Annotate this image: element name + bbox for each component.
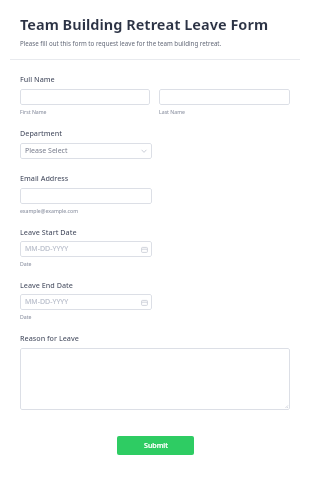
staticText: Please fill out this form to request lea… — [20, 39, 222, 47]
staticText: Please Select — [25, 146, 68, 156]
staticText: Reason for Leave — [20, 333, 79, 343]
staticText: Email Address — [20, 173, 69, 183]
staticText: Full Name — [20, 74, 55, 84]
staticText: Submit — [144, 441, 168, 451]
staticText: Leave End Date — [20, 280, 73, 290]
button[interactable]: Last Name — [159, 89, 290, 105]
staticText: Leave Start Date — [20, 227, 77, 237]
button[interactable]: Reason for Leave — [20, 348, 290, 410]
button[interactable]: Email Address — [20, 188, 152, 204]
staticText: MM-DD-YYYY — [25, 244, 69, 254]
staticText: Last Name — [159, 108, 185, 115]
button[interactable]: First Name — [20, 89, 150, 105]
button[interactable]: Submit — [117, 436, 194, 455]
staticText: Date — [20, 313, 32, 320]
staticText: Team Building Retreat Leave Form — [20, 14, 269, 34]
staticText: Department — [20, 128, 62, 138]
button[interactable]: Leave Start Date — [20, 241, 152, 257]
staticText: example@example.com — [20, 207, 79, 214]
button[interactable]: Leave End Date — [20, 294, 152, 310]
staticText: Date — [20, 260, 32, 267]
button[interactable]: Please Select — [20, 143, 152, 159]
staticText: MM-DD-YYYY — [25, 297, 69, 307]
staticText: First Name — [20, 108, 47, 115]
